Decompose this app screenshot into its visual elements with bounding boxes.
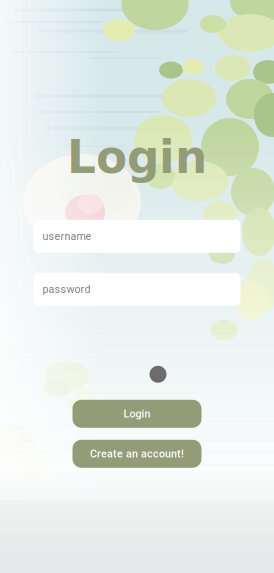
staticText: Login (123, 407, 150, 420)
staticText: password (42, 283, 90, 295)
button[interactable]: Login (72, 400, 201, 428)
staticText: Create an account! (90, 447, 184, 460)
button[interactable]: Create an account! (72, 440, 201, 468)
staticText: username (42, 230, 91, 242)
staticText: Login (67, 131, 207, 184)
